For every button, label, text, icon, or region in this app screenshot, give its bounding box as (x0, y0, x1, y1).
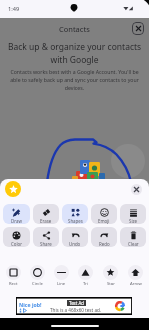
staticText: 1:49 (8, 5, 20, 13)
staticText: Size (129, 218, 138, 224)
button[interactable]: Line (49, 265, 73, 287)
staticText: Contacts works best with a Google Accoun… (5, 68, 144, 91)
button[interactable]: Close tools (131, 184, 142, 195)
button[interactable]: Emoji (91, 204, 117, 224)
button[interactable]: Circle (25, 265, 49, 287)
button[interactable]: Close (132, 22, 144, 35)
button[interactable]: Redo (91, 227, 117, 247)
staticText: Arrow (130, 281, 142, 287)
button[interactable]: Nice job! (16, 297, 132, 315)
staticText: Share (40, 241, 52, 247)
button[interactable]: Size (120, 204, 146, 224)
staticText: Tri (83, 281, 88, 287)
staticText: Erase (40, 218, 52, 224)
staticText: Nice job! (19, 301, 42, 308)
staticText: Emoji (98, 218, 110, 224)
staticText: Draw (11, 218, 22, 224)
button[interactable]: Arrow (123, 265, 148, 287)
button[interactable]: Shapes (62, 204, 88, 224)
staticText: Redo (99, 241, 110, 247)
button[interactable]: Color (3, 227, 30, 247)
staticText: Rect (9, 281, 18, 287)
staticText: This is a 468x60 test ad. (50, 307, 102, 313)
button[interactable]: Undo (62, 227, 88, 247)
button[interactable]: Clear (120, 227, 146, 247)
button[interactable]: Erase (33, 204, 59, 224)
staticText: Clear (128, 241, 139, 247)
button[interactable]: Star (98, 265, 123, 287)
button[interactable]: Tri (73, 265, 98, 287)
staticText: Color (11, 241, 23, 247)
staticText: Line (57, 281, 66, 287)
staticText: Back up & organize your contacts with Go… (4, 41, 145, 65)
button[interactable]: Share (33, 227, 59, 247)
staticText: Contacts (59, 24, 90, 34)
staticText: Test Ad (69, 300, 84, 306)
staticText: Shapes (68, 218, 83, 224)
button[interactable]: Rect (1, 265, 25, 287)
staticText: Star (107, 281, 115, 287)
button[interactable]: Draw (3, 204, 30, 224)
staticText: Circle (32, 281, 43, 287)
staticText: Undo (69, 241, 81, 247)
button[interactable]: Magic assist (5, 181, 21, 197)
